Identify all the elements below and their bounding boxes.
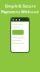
staticText: Simple & Secure	[4, 3, 35, 9]
staticText: Payments Without	[1, 9, 39, 14]
